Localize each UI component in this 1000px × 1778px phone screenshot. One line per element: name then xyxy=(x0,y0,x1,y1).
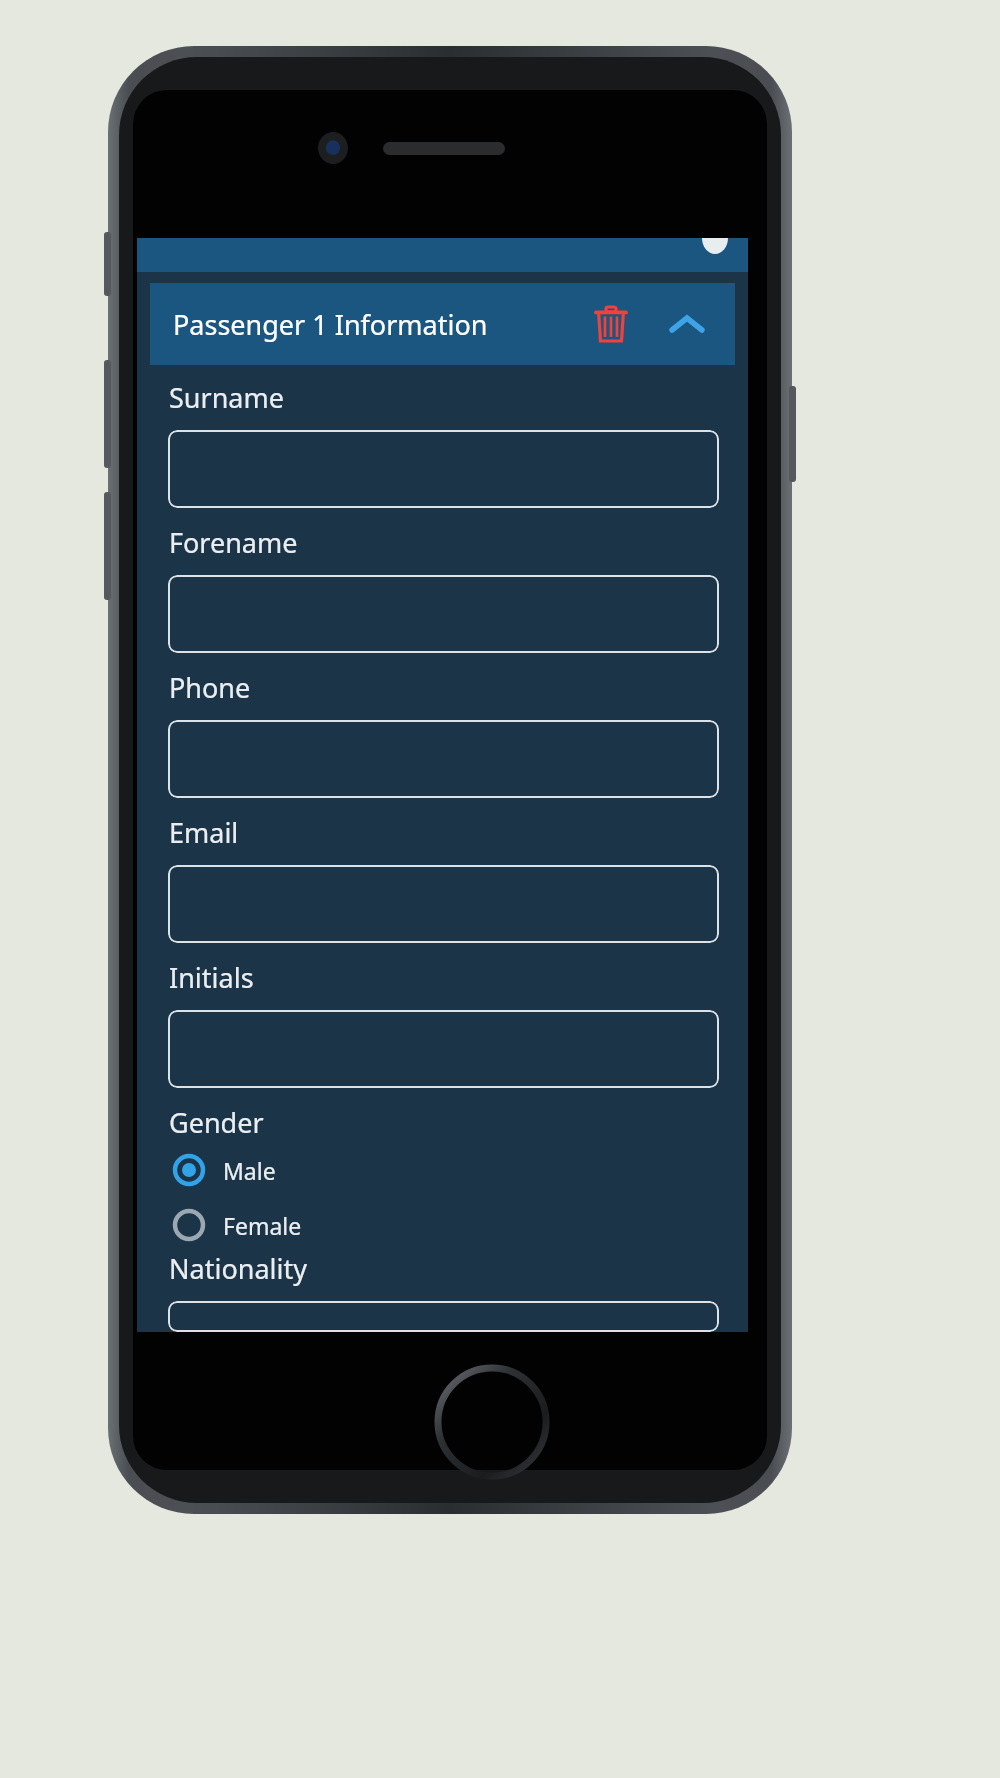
staticText: Female xyxy=(223,1210,302,1241)
staticText: Initials xyxy=(169,959,254,996)
staticText: Nationality xyxy=(169,1250,307,1287)
staticText: Phone xyxy=(169,669,251,706)
staticText: Passenger 1 Information xyxy=(173,306,583,343)
button[interactable]: Text field xyxy=(168,1010,719,1088)
staticText: Forename xyxy=(169,524,298,561)
button[interactable]: Delete passenger xyxy=(583,296,639,352)
button[interactable]: Male xyxy=(168,1147,276,1193)
button[interactable]: Text field xyxy=(168,1301,719,1332)
button[interactable]: Collapse section xyxy=(659,296,715,352)
staticText: Surname xyxy=(169,379,284,416)
button[interactable]: Text field xyxy=(168,575,719,653)
staticText: Male xyxy=(223,1155,276,1186)
button[interactable]: Text field xyxy=(168,720,719,798)
button[interactable]: Text field xyxy=(168,430,719,508)
button[interactable]: Passenger 1 Information xyxy=(150,283,735,365)
staticText: Gender xyxy=(169,1104,264,1141)
button[interactable]: Female xyxy=(168,1202,302,1248)
button[interactable]: Text field xyxy=(168,865,719,943)
staticText: Email xyxy=(169,814,239,851)
